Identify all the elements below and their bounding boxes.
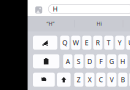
staticText: S (77, 57, 81, 66)
staticText: Y (118, 38, 122, 47)
button[interactable]: X (85, 73, 94, 87)
button[interactable]: H (118, 54, 127, 68)
staticText: U (128, 38, 130, 47)
button[interactable]: Z (74, 73, 83, 87)
staticText: H (120, 57, 125, 66)
button[interactable]: Message, H (48, 4, 130, 14)
staticText: T (107, 38, 111, 47)
button[interactable]: T (104, 36, 113, 50)
button[interactable]: Hi (75, 16, 122, 31)
button[interactable]: V (107, 73, 116, 87)
button[interactable]: N (129, 73, 130, 87)
button[interactable]: Y (115, 36, 124, 50)
staticText: G (109, 57, 114, 66)
staticText: A (66, 57, 70, 66)
staticText: B (121, 75, 125, 84)
button[interactable]: A (63, 54, 72, 68)
button[interactable]: G (107, 54, 116, 68)
button[interactable]: S (74, 54, 83, 68)
staticText: X (88, 75, 92, 84)
staticText: H (53, 5, 58, 13)
staticText: E (85, 38, 89, 47)
button[interactable]: E (82, 36, 91, 50)
staticText: “H” (46, 20, 54, 27)
button[interactable]: B (118, 73, 127, 87)
button[interactable]: U (126, 36, 130, 50)
staticText: D (87, 57, 92, 66)
staticText: Q (62, 38, 67, 47)
button[interactable]: Undo (33, 73, 55, 87)
staticText: Hi (96, 20, 101, 27)
staticText: V (110, 75, 114, 84)
button[interactable]: Add photo (33, 4, 44, 16)
staticText: Z (77, 75, 81, 84)
button[interactable]: Shift (57, 73, 71, 87)
staticText: C (99, 75, 103, 84)
button[interactable]: C (96, 73, 105, 87)
button[interactable]: Q (60, 36, 69, 50)
button[interactable]: D (85, 54, 94, 68)
button[interactable]: W (71, 36, 80, 50)
button[interactable]: F (96, 54, 105, 68)
staticText: W (73, 38, 79, 47)
staticText: F (99, 57, 102, 66)
staticText: R (96, 38, 100, 47)
button[interactable]: Cut (33, 36, 57, 50)
button[interactable]: R (93, 36, 102, 50)
button[interactable]: “H” (27, 16, 74, 31)
button[interactable]: Paste (33, 54, 59, 68)
